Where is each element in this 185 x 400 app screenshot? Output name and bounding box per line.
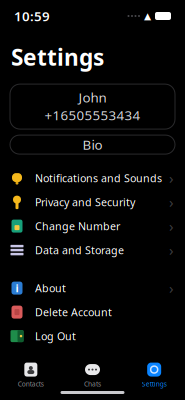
staticText: › — [169, 216, 174, 236]
button[interactable]: Chats — [62, 362, 123, 388]
staticText: ▲ — [144, 11, 151, 21]
staticText: Log Out — [35, 329, 76, 343]
staticText: Chats — [84, 380, 101, 388]
button[interactable]: Log Out — [0, 324, 185, 348]
staticText: Data and Storage — [35, 243, 124, 257]
button[interactable]: Contacts — [0, 362, 62, 388]
button[interactable]: Data and Storage — [0, 238, 185, 262]
button[interactable]: Settings — [123, 362, 185, 388]
button[interactable]: Notifications and Sounds — [0, 166, 185, 190]
button[interactable]: Delete Account — [0, 300, 185, 324]
staticText: › — [169, 168, 174, 188]
staticText: Notifications and Sounds — [35, 171, 162, 185]
staticText: John — [78, 88, 106, 106]
staticText: › — [169, 240, 174, 260]
staticText: Bio — [82, 136, 102, 153]
staticText: Settings — [11, 42, 104, 72]
staticText: 10:59 — [14, 7, 50, 25]
button[interactable]: John — [10, 84, 175, 129]
button[interactable]: Privacy and Security — [0, 190, 185, 214]
staticText: Privacy and Security — [35, 195, 135, 209]
staticText: › — [169, 278, 174, 298]
button[interactable]: Bio — [10, 135, 175, 154]
staticText: Delete Account — [35, 305, 112, 319]
button[interactable]: i — [0, 276, 185, 300]
staticText: Contacts — [18, 380, 44, 388]
staticText: i — [15, 281, 18, 295]
staticText: About — [35, 281, 66, 295]
staticText: Settings — [142, 380, 167, 388]
staticText: Change Number — [35, 219, 120, 233]
staticText: › — [169, 192, 174, 212]
button[interactable]: Change Number — [0, 214, 185, 238]
staticText: +16505553434 — [44, 106, 140, 124]
